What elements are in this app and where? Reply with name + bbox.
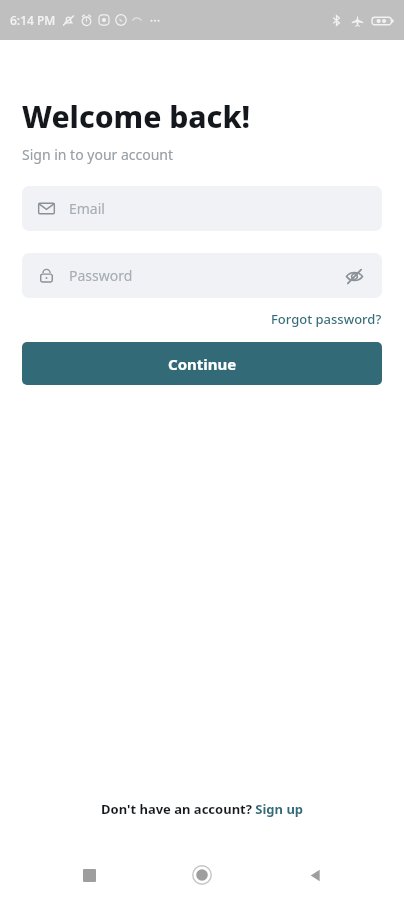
button[interactable]: Don't have an account? Sign up [97, 796, 308, 822]
button[interactable]: Continue [22, 342, 382, 385]
staticText: Forgot password? [271, 310, 382, 328]
staticText: Continue [168, 354, 237, 374]
staticText: Email [69, 199, 105, 218]
button[interactable]: Show password [340, 262, 368, 290]
button[interactable]: Recents [65, 851, 113, 899]
staticText: 6:14 PM [10, 12, 56, 28]
button[interactable]: Home [178, 851, 226, 899]
staticText: Sign in to your account [22, 145, 174, 164]
button[interactable]: Back [291, 851, 339, 899]
button[interactable]: Email [22, 186, 382, 231]
staticText: Welcome back! [22, 96, 251, 137]
staticText: Don't have an account? Sign up [101, 800, 304, 818]
button[interactable]: Forgot password? [271, 308, 382, 330]
button[interactable]: Password [22, 253, 382, 298]
staticText: Password [69, 266, 133, 285]
